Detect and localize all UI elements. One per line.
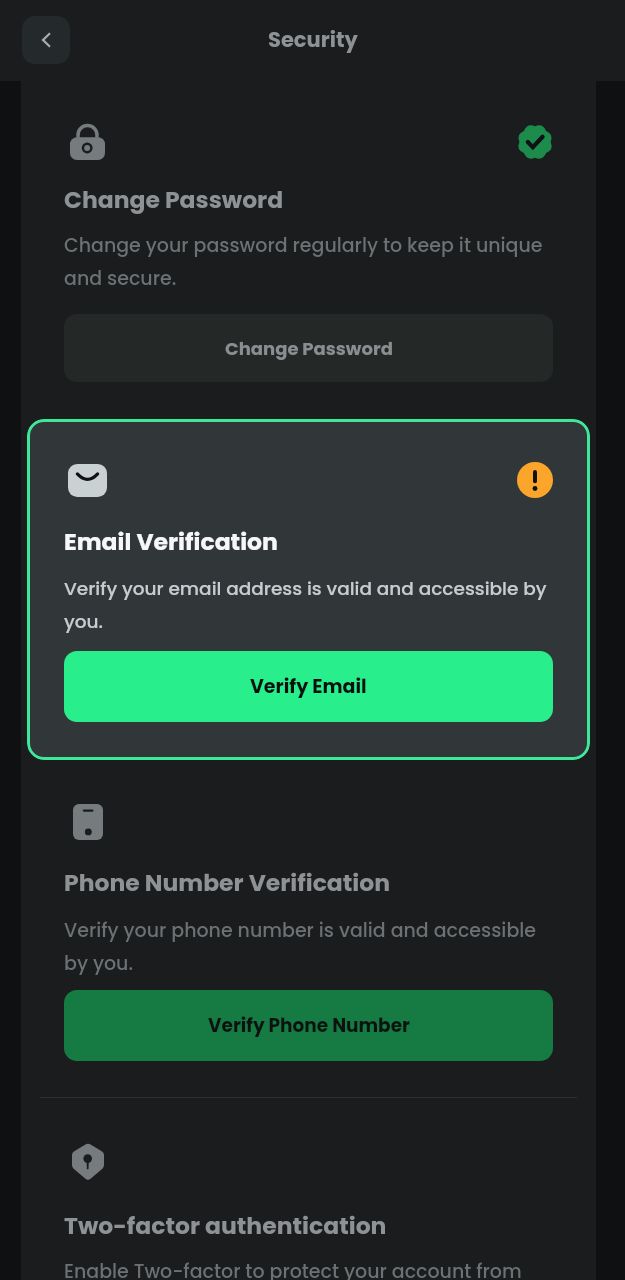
- staticText: Verify Phone Number: [208, 1013, 410, 1039]
- staticText: Change Password: [225, 336, 393, 361]
- button[interactable]: Change Password: [64, 314, 553, 382]
- staticText: Enable Two-factor to protect your accoun…: [64, 1258, 553, 1280]
- staticText: Email Verification: [64, 525, 278, 558]
- staticText: Two-factor authentication: [64, 1209, 387, 1242]
- staticText: Verify your email address is valid and a…: [64, 576, 553, 635]
- staticText: Verify Email: [250, 673, 367, 700]
- button[interactable]: Verify Phone Number: [64, 990, 553, 1061]
- staticText: Change Password: [64, 183, 284, 216]
- staticText: Change your password regularly to keep i…: [64, 232, 553, 292]
- button[interactable]: Back: [22, 16, 70, 64]
- staticText: Verify your phone number is valid and ac…: [64, 917, 553, 977]
- staticText: Phone Number Verification: [64, 866, 391, 899]
- staticText: Security: [268, 25, 358, 54]
- button[interactable]: Verify Email: [64, 651, 553, 722]
